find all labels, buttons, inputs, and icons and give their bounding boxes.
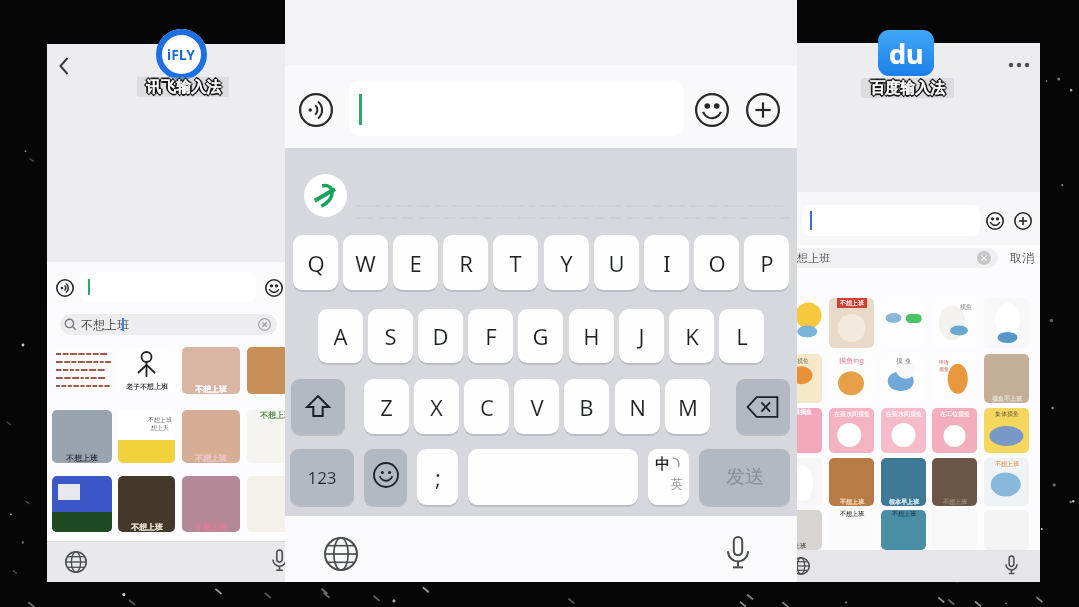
button[interactable]: 不想上班 [118, 476, 175, 532]
button[interactable] [1008, 60, 1032, 70]
button[interactable]: E [393, 235, 438, 290]
button[interactable]: K [669, 309, 714, 363]
button[interactable]: U [594, 235, 639, 290]
button[interactable] [648, 449, 689, 505]
button[interactable]: 不想上班 [881, 510, 926, 550]
button[interactable] [364, 449, 407, 505]
button[interactable]: 不想上班 [829, 458, 874, 506]
button[interactable]: S [368, 309, 413, 363]
button[interactable] [977, 251, 991, 265]
button[interactable]: D [418, 309, 463, 363]
button[interactable]: 发送 [699, 449, 790, 505]
button[interactable]: 老子不想上班 [118, 347, 175, 394]
button[interactable]: F [468, 309, 513, 363]
button[interactable]: 在工位摸鱼 [932, 408, 977, 453]
staticText: U [608, 248, 625, 278]
button[interactable]: 根本早上班 [881, 458, 926, 506]
button[interactable] [802, 205, 980, 236]
button[interactable]: 在茶水间摸鱼 [881, 408, 926, 453]
button[interactable] [1014, 212, 1032, 230]
button[interactable] [258, 318, 271, 331]
button[interactable] [52, 347, 112, 394]
button[interactable] [736, 379, 790, 434]
button[interactable] [797, 557, 810, 575]
button[interactable] [728, 537, 748, 570]
button[interactable]: A [318, 309, 363, 363]
button[interactable]: M [665, 379, 710, 434]
button[interactable] [695, 93, 729, 127]
button[interactable]: 不想上班 [829, 510, 874, 550]
button[interactable] [57, 56, 71, 76]
button[interactable] [797, 248, 998, 268]
button[interactable]: 不想上班 [182, 410, 240, 463]
button[interactable]: Q [293, 235, 338, 290]
button[interactable] [291, 379, 345, 434]
button[interactable] [881, 298, 926, 348]
button[interactable] [797, 458, 822, 506]
button[interactable] [468, 449, 638, 505]
button[interactable]: 在茶水间摸鱼 [829, 408, 874, 453]
button[interactable]: 不想上班 想上天 [118, 410, 175, 463]
button[interactable]: 不想上班 [182, 476, 240, 532]
button[interactable]: R [443, 235, 488, 290]
button[interactable] [265, 279, 283, 297]
button[interactable] [324, 537, 358, 571]
button[interactable]: du [878, 30, 934, 76]
button[interactable]: T [493, 235, 538, 290]
button[interactable] [273, 550, 285, 572]
button[interactable]: H [569, 309, 614, 363]
button[interactable] [349, 81, 684, 136]
button[interactable] [746, 93, 780, 127]
button[interactable]: ; [417, 449, 458, 505]
button[interactable] [56, 279, 74, 297]
button[interactable]: 摸鱼ing [829, 354, 874, 403]
button[interactable]: P [744, 235, 789, 290]
button[interactable]: J [619, 309, 664, 363]
staticText: O [708, 248, 726, 278]
button[interactable]: I [644, 235, 689, 290]
staticText: F [485, 321, 497, 351]
button[interactable]: Y [544, 235, 589, 290]
button[interactable]: 不想上班 [247, 410, 285, 463]
button[interactable]: Z [364, 379, 409, 434]
button[interactable]: 上班 [797, 510, 822, 550]
button[interactable]: W [343, 235, 388, 290]
button[interactable]: G [518, 309, 563, 363]
button[interactable]: 集体摸鱼 [984, 408, 1029, 453]
button[interactable]: L [719, 309, 764, 363]
button[interactable]: iFLY [156, 29, 207, 80]
button[interactable] [60, 314, 277, 335]
button[interactable]: 摸鱼 [932, 298, 977, 348]
button[interactable] [797, 298, 822, 348]
button[interactable]: 不想上班 [984, 458, 1029, 506]
button[interactable]: 申请 摸鱼 [932, 354, 977, 403]
button[interactable] [65, 551, 87, 573]
button[interactable] [80, 272, 256, 302]
button[interactable]: 的摸鱼 [797, 354, 822, 403]
button[interactable]: C [464, 379, 509, 434]
button[interactable]: V [514, 379, 559, 434]
button[interactable]: 不想上班 [52, 410, 112, 463]
button[interactable] [299, 93, 333, 127]
button[interactable] [247, 347, 285, 394]
button[interactable]: 公司摸鱼 [797, 408, 822, 453]
button[interactable] [304, 174, 347, 217]
button[interactable]: 不想上班 [932, 458, 977, 506]
button[interactable] [1006, 556, 1017, 575]
button[interactable] [52, 476, 112, 532]
staticText: 讯飞输入法 [144, 78, 219, 97]
button[interactable] [984, 298, 1029, 348]
button[interactable]: 123 [290, 449, 354, 505]
button[interactable]: 摸 鱼 [881, 354, 926, 403]
button[interactable]: 不想上班 [829, 298, 874, 348]
button[interactable]: X [414, 379, 459, 434]
button[interactable]: B [564, 379, 609, 434]
button[interactable]: 不想上班 [182, 347, 240, 394]
button[interactable]: N [615, 379, 660, 434]
button[interactable]: 摸鱼不上班 [984, 354, 1029, 403]
button[interactable] [986, 212, 1004, 230]
button[interactable]: O [694, 235, 739, 290]
